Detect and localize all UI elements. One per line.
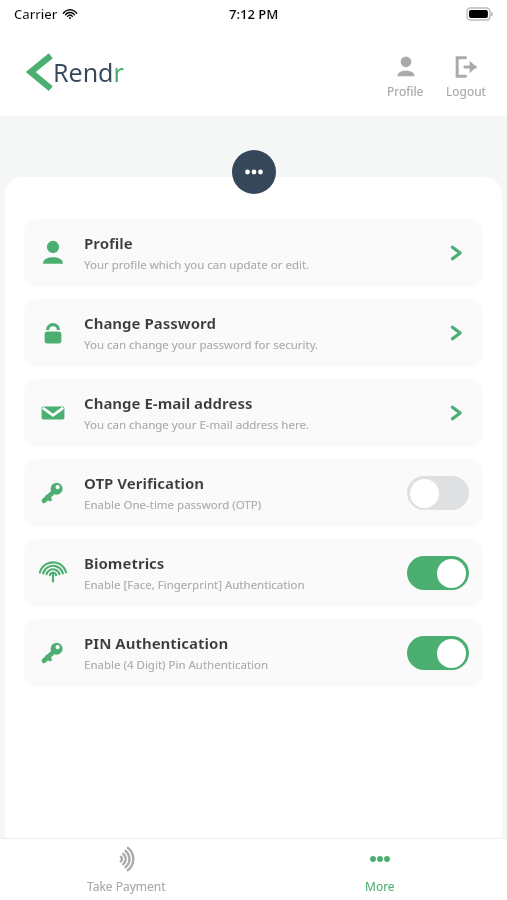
staticText: Your profile which you can update or edi… [84,257,310,273]
staticText: Logout [446,83,486,99]
staticText: Enable One-time password (OTP) [84,497,262,513]
staticText: Take Payment [87,878,166,894]
staticText: Enable (4 Digit) Pin Authentication [84,657,269,673]
staticText: Change E-mail address [84,393,253,413]
staticText: Change Password [84,313,216,333]
staticText: OTP Verification [84,473,205,493]
button[interactable]: PIN Authentication toggle [407,636,469,670]
button[interactable]: PIN Authentication [24,619,483,687]
staticText: Profile [84,233,133,253]
button[interactable]: Logout [443,54,489,99]
button[interactable]: More [253,839,507,900]
staticText: Biometrics [84,553,165,573]
button[interactable]: Change E-mail address [24,379,483,447]
button[interactable]: Change Password [24,299,483,367]
button[interactable]: Change E-mail address [443,400,469,426]
button[interactable]: Change Password [443,320,469,346]
button[interactable]: Profile [384,54,427,99]
staticText: Enable [Face, Fingerprint] Authenticatio… [84,577,305,593]
staticText: Carrier [14,5,58,23]
button[interactable]: Take Payment [0,839,253,900]
staticText: Profile [387,83,424,99]
button[interactable]: Biometrics toggle [407,556,469,590]
button[interactable]: Profile [24,219,483,287]
staticText: Rendr [53,55,124,89]
staticText: You can change your password for securit… [84,337,319,353]
button[interactable]: Rendr [26,55,124,89]
button[interactable]: OTP Verification toggle [407,476,469,510]
staticText: More [365,878,395,894]
staticText: PIN Authentication [84,633,229,653]
staticText: 7:12 PM [229,5,279,23]
button[interactable]: OTP Verification [24,459,483,527]
button[interactable]: Profile [443,240,469,266]
staticText: You can change your E-mail address here. [84,417,309,433]
button[interactable]: More options [232,150,276,194]
button[interactable]: Biometrics [24,539,483,607]
